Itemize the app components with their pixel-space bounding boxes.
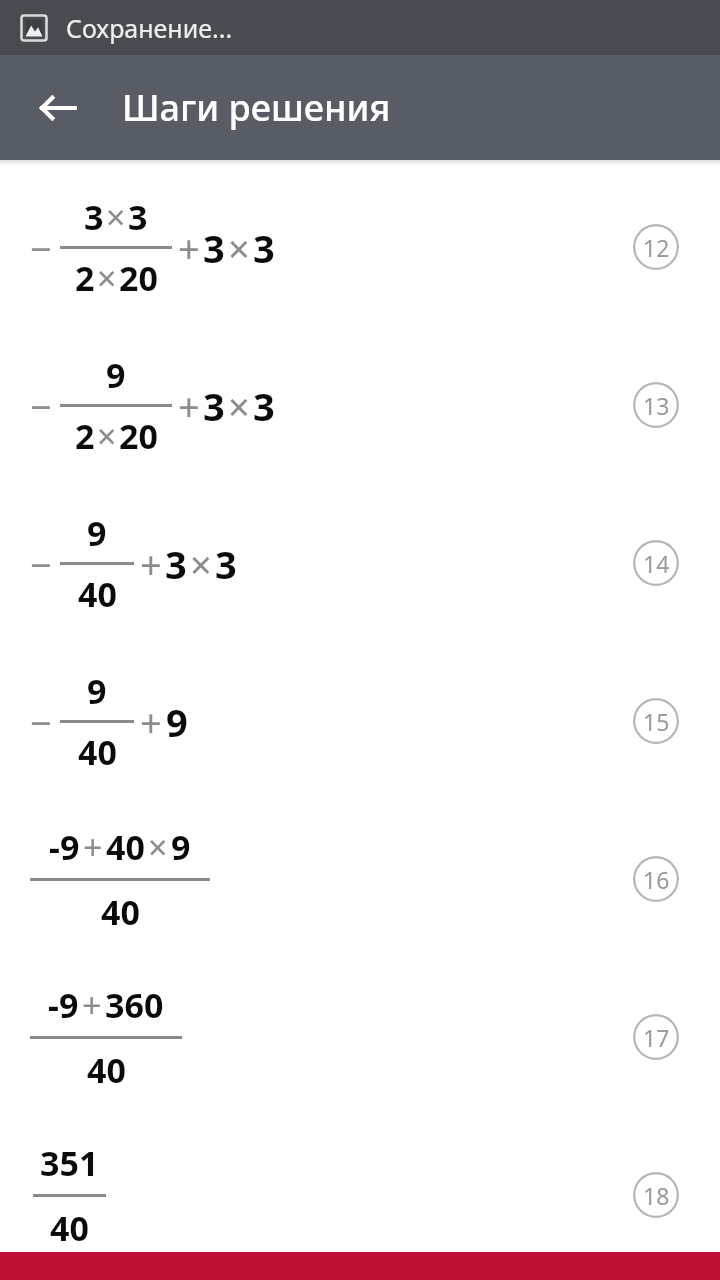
staticText: 40 [106, 824, 145, 870]
staticText: 9 [166, 696, 188, 748]
staticText: × [190, 538, 212, 590]
staticText: 40 [50, 1205, 89, 1251]
button[interactable]: 351 [0, 1116, 720, 1274]
staticText: − [30, 380, 52, 432]
staticText: Шаги решения [122, 83, 391, 132]
staticText: 360 [105, 982, 164, 1028]
staticText: 3 [165, 538, 187, 590]
button[interactable]: -9 [0, 958, 720, 1116]
staticText: 9 [87, 668, 107, 714]
staticText: × [228, 222, 250, 274]
staticText: 20 [119, 255, 158, 301]
button[interactable]: Back [27, 77, 89, 139]
button[interactable]: − [0, 642, 720, 800]
button[interactable]: Step 15 [633, 698, 679, 744]
staticText: 40 [87, 1047, 126, 1093]
button[interactable]: Step 14 [633, 540, 679, 586]
staticText: × [97, 255, 117, 301]
button[interactable]: Step 12 [633, 224, 679, 270]
staticText: 17 [643, 1022, 670, 1053]
staticText: 12 [643, 232, 670, 263]
button[interactable]: -9 [0, 800, 720, 958]
button[interactable]: − [0, 326, 720, 484]
staticText: -9 [49, 824, 80, 870]
staticText: 40 [101, 889, 140, 935]
staticText: 2 [75, 413, 95, 459]
staticText: × [148, 824, 168, 870]
staticText: 40 [78, 571, 117, 617]
staticText: + [140, 538, 162, 590]
button[interactable]: − [0, 484, 720, 642]
button[interactable]: Step 18 [633, 1172, 679, 1218]
staticText: 3 [253, 222, 275, 274]
staticText: 9 [171, 824, 191, 870]
button[interactable]: − [0, 168, 720, 326]
staticText: 3 [203, 380, 225, 432]
staticText: 13 [643, 390, 670, 421]
staticText: 18 [643, 1180, 670, 1211]
staticText: − [30, 696, 52, 748]
staticText: + [82, 982, 102, 1028]
button[interactable]: Step 13 [633, 382, 679, 428]
button[interactable]: Step 17 [633, 1014, 679, 1060]
staticText: 40 [78, 729, 117, 775]
staticText: + [178, 380, 200, 432]
staticText: × [97, 413, 117, 459]
staticText: 3 [84, 194, 104, 240]
staticText: -9 [48, 982, 79, 1028]
staticText: × [106, 194, 126, 240]
staticText: × [228, 380, 250, 432]
staticText: 3 [253, 380, 275, 432]
staticText: 14 [643, 548, 670, 579]
staticText: 9 [87, 510, 107, 556]
staticText: + [83, 824, 103, 870]
staticText: Сохранение... [66, 11, 233, 45]
staticText: + [178, 222, 200, 274]
staticText: 16 [643, 864, 670, 895]
staticText: + [140, 696, 162, 748]
staticText: 9 [106, 352, 126, 398]
staticText: 20 [119, 413, 158, 459]
staticText: 3 [203, 222, 225, 274]
staticText: − [30, 538, 52, 590]
staticText: 15 [643, 706, 670, 737]
staticText: 351 [40, 1140, 99, 1186]
staticText: 2 [75, 255, 95, 301]
staticText: − [30, 222, 52, 274]
button[interactable]: Step 16 [633, 856, 679, 902]
staticText: 3 [215, 538, 237, 590]
staticText: 3 [128, 194, 148, 240]
